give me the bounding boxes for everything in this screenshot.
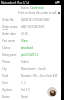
staticText: Confirmed [30,6,44,9]
staticText: Part name [2,39,16,43]
button[interactable]: Order status code [0,23,64,30]
staticText: Status [21,6,30,9]
button[interactable]: City [0,65,64,72]
staticText: Set 3 3 [21,88,30,92]
button[interactable]: Delay parts [0,51,64,58]
staticText: 41 30 [21,32,28,36]
staticText: Phone [2,60,11,64]
staticText: Glass [21,39,28,43]
staticText: None [21,95,28,99]
button[interactable]: Notes [0,93,64,100]
button[interactable]: Options [0,86,64,93]
staticText: Order date [2,32,16,36]
staticText: Notes [2,95,10,99]
staticText: Manchester - South [21,67,46,71]
staticText: Anodised [21,46,33,50]
staticText: Colour [2,46,11,50]
staticText: Total [2,74,9,78]
staticText: City [2,67,7,71]
staticText: Number 105 + Over Seat 835 [21,74,58,78]
staticText: Order status code [2,25,21,30]
button[interactable]: User [0,79,64,86]
staticText: ▲▮▮ [55,1,60,4]
button[interactable]: Print or share to pdf [0,11,60,14]
staticText: Jan/21/2019 2 [21,53,39,57]
staticText: ASM2381 975483 9843 [21,18,50,22]
staticText: Tablet [21,60,29,64]
button[interactable]: Colour [0,44,64,51]
staticText: Motorola e5 Plus 5.1.4 [1,1,30,5]
staticText: 3 3 [21,81,26,85]
button[interactable]: Total [0,72,64,79]
staticText: User [2,81,8,85]
button[interactable]: Phone [0,58,64,65]
staticText: Print or share this order to pdf [18,11,57,14]
button[interactable]: Profile photo [47,87,57,97]
button[interactable]: Part name [0,37,64,44]
staticText: Delay parts [2,53,17,57]
button[interactable]: Order date [0,30,64,37]
staticText: Order No [2,18,14,22]
button[interactable]: Order No [0,16,64,23]
staticText: ABJY 3410 8478 83 [21,25,45,29]
staticText: Options [2,88,12,92]
